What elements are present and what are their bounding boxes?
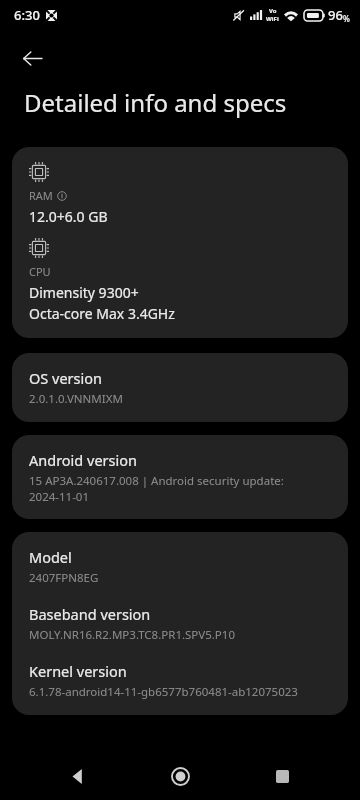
staticText: 2407FPN8EG — [29, 570, 99, 586]
button[interactable]: Home — [156, 752, 204, 800]
staticText: Detailed info and specs — [24, 86, 287, 119]
staticText: 96 — [328, 6, 343, 24]
staticText: Vo — [269, 7, 277, 15]
button[interactable]: Navigate up — [10, 36, 54, 80]
button[interactable]: RAM — [12, 147, 348, 338]
staticText: Android version — [29, 450, 137, 470]
staticText: 6:30 — [14, 6, 40, 24]
staticText: 6.1.78-android14-11-gb6577b760481-ab1207… — [29, 684, 298, 700]
staticText: OS version — [29, 368, 103, 388]
staticText: Kernel version — [29, 661, 127, 681]
staticText: WiFi — [266, 15, 279, 23]
staticText: CPU — [29, 264, 51, 279]
staticText: Octa-core Max 3.4GHz — [29, 304, 175, 323]
staticText: % — [343, 13, 350, 24]
button[interactable]: Android version — [12, 435, 348, 519]
staticText: Model — [29, 547, 72, 567]
staticText: MOLY.NR16.R2.MP3.TC8.PR1.SPV5.P10 — [29, 627, 235, 643]
staticText: 12.0+6.0 GB — [29, 207, 108, 226]
staticText: 15 AP3A.240617.008 | Android security up… — [29, 473, 284, 504]
button[interactable]: Back — [54, 752, 102, 800]
staticText: Baseband version — [29, 604, 151, 624]
staticText: Dimensity 9300+ — [29, 283, 139, 302]
staticText: 2.0.1.0.VNNMIXM — [29, 391, 123, 407]
button[interactable]: Recents — [258, 752, 306, 800]
staticText: RAM — [29, 188, 53, 203]
button[interactable]: OS version — [12, 353, 348, 422]
button[interactable]: Model — [12, 532, 348, 715]
